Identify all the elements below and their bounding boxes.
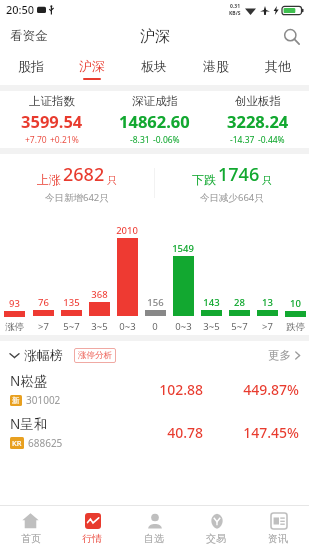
button[interactable]: 其他 (247, 53, 309, 85)
button[interactable]: 看资金 (0, 22, 58, 50)
button[interactable]: 13 (253, 296, 281, 333)
button[interactable]: 板块 (123, 53, 185, 85)
staticText: 449.87% (203, 380, 299, 399)
staticText: 上证指数 (29, 94, 75, 108)
staticText: 301002 (26, 393, 61, 407)
staticText: 沪深 (140, 27, 170, 46)
staticText: 只 (262, 174, 272, 187)
button[interactable]: 创业板指 (206, 91, 309, 148)
button[interactable]: Search (274, 23, 309, 50)
staticText: 3599.54 (21, 110, 83, 132)
staticText: 93 (9, 297, 20, 310)
staticText: 40.78 (121, 423, 203, 442)
button[interactable]: 股指 (0, 53, 61, 85)
staticText: 14862.60 (119, 110, 190, 132)
staticText: 股指 (18, 58, 44, 74)
staticText: 1746 (218, 162, 260, 187)
staticText: 今日减少664只 (200, 191, 264, 204)
button[interactable]: 沪深 (61, 53, 123, 85)
button[interactable]: 143 (197, 296, 225, 333)
staticText: 只 (107, 174, 117, 187)
staticText: 下跌 (192, 172, 216, 187)
staticText: 0.31 (230, 3, 240, 10)
staticText: 0 (152, 320, 158, 333)
staticText: 涨幅榜 (24, 347, 63, 363)
staticText: 2010 (116, 224, 138, 237)
button[interactable]: 深证成指 (103, 91, 206, 148)
button[interactable]: 上证指数 (0, 91, 103, 148)
staticText: -14.37 (230, 134, 255, 146)
button[interactable]: 交易 (185, 506, 247, 550)
button[interactable]: 135 (57, 296, 85, 333)
staticText: 自选 (144, 532, 164, 545)
button[interactable]: 156 (141, 296, 169, 333)
button[interactable]: 自选 (123, 506, 185, 550)
button[interactable]: 28 (225, 296, 253, 333)
staticText: -0.06% (153, 134, 180, 146)
button[interactable]: 10 (281, 297, 309, 333)
staticText: +0.21% (50, 134, 79, 146)
button[interactable]: 93 (0, 297, 29, 333)
staticText: KR (12, 438, 22, 448)
staticText: 涨停 (5, 321, 24, 333)
staticText: 135 (63, 296, 80, 309)
staticText: 143 (203, 296, 220, 309)
staticText: 20:50 (6, 2, 35, 17)
staticText: 涨停分析 (78, 350, 112, 361)
staticText: +7.70 (25, 134, 47, 146)
staticText: 5~7 (231, 320, 248, 333)
button[interactable]: 更多 (260, 344, 309, 366)
button[interactable]: 资讯 (247, 506, 309, 550)
staticText: >7 (38, 320, 49, 333)
staticText: 1549 (172, 242, 194, 255)
button[interactable]: 涨停分析 (74, 348, 116, 363)
staticText: 沪深 (79, 58, 105, 74)
button[interactable]: 上涨 (0, 154, 154, 211)
staticText: 688625 (28, 436, 63, 450)
button[interactable]: 首页 (0, 506, 61, 550)
button[interactable]: 涨幅榜 (8, 345, 65, 365)
staticText: 更多 (268, 348, 291, 362)
staticText: 行情 (82, 532, 102, 545)
staticText: 76 (38, 296, 49, 309)
button[interactable]: N崧盛 (0, 368, 309, 411)
button[interactable]: 港股 (185, 53, 247, 85)
staticText: 今日新增642只 (45, 191, 109, 204)
staticText: 10 (290, 297, 301, 310)
staticText: 3~5 (203, 320, 220, 333)
staticText: 交易 (206, 532, 226, 545)
staticText: 首页 (21, 532, 41, 545)
staticText: 0~3 (119, 320, 136, 333)
button[interactable]: 2010 (113, 224, 141, 333)
staticText: 3~5 (91, 320, 108, 333)
staticText: 368 (91, 288, 108, 301)
staticText: 跌停 (286, 321, 305, 333)
staticText: N呈和 (10, 415, 48, 433)
staticText: 13 (262, 296, 273, 309)
staticText: 创业板指 (235, 94, 281, 108)
staticText: 资讯 (268, 532, 288, 545)
staticText: 3228.24 (227, 110, 289, 132)
staticText: >7 (262, 320, 273, 333)
button[interactable]: 行情 (61, 506, 123, 550)
staticText: 其他 (265, 58, 291, 74)
staticText: N崧盛 (10, 372, 48, 390)
button[interactable]: N呈和 (0, 411, 309, 454)
staticText: 156 (147, 296, 164, 309)
staticText: -8.31 (130, 134, 150, 146)
button[interactable]: 76 (29, 296, 57, 333)
staticText: KB/S (229, 10, 241, 17)
staticText: 147.45% (203, 423, 299, 442)
staticText: 5~7 (63, 320, 80, 333)
staticText: 板块 (141, 58, 167, 74)
staticText: -0.44% (258, 134, 285, 146)
button[interactable]: 368 (85, 288, 113, 333)
staticText: 看资金 (10, 28, 48, 44)
staticText: 港股 (203, 58, 229, 74)
staticText: 2682 (63, 162, 105, 187)
staticText: 102.88 (121, 380, 203, 399)
button[interactable]: 下跌 (155, 154, 309, 211)
staticText: 28 (234, 296, 245, 309)
staticText: 新 (12, 396, 20, 405)
button[interactable]: 1549 (169, 242, 197, 333)
